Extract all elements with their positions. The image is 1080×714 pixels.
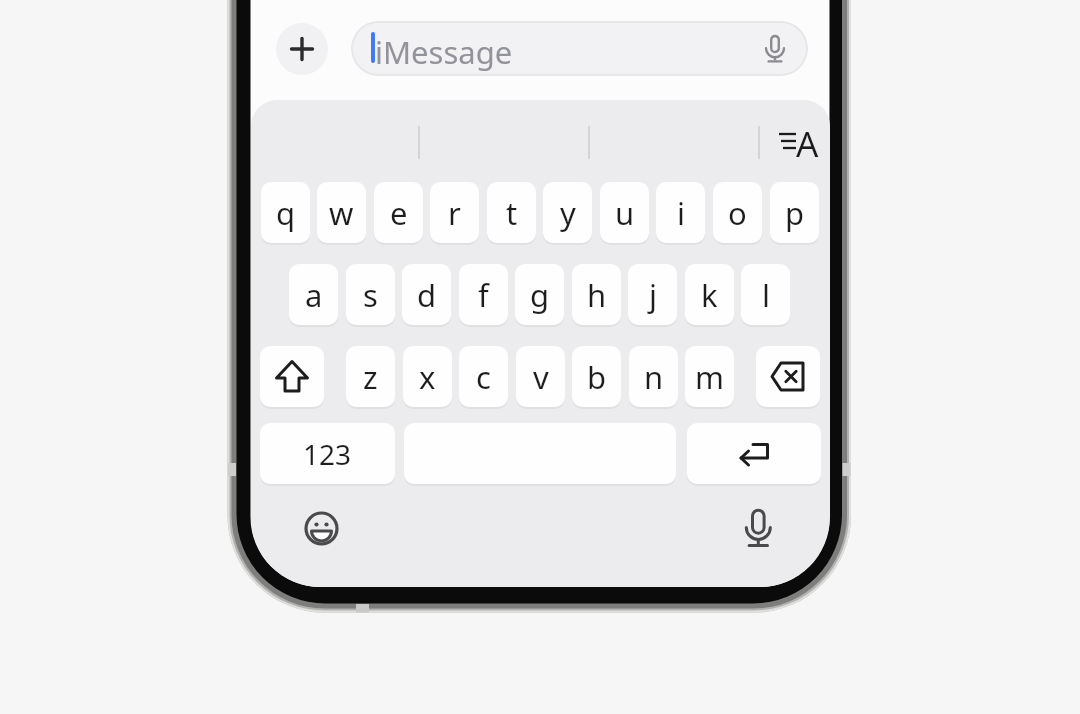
button[interactable]: m — [685, 346, 734, 407]
button[interactable]: x — [403, 346, 452, 407]
button[interactable]: e — [374, 182, 423, 243]
staticText: q — [276, 192, 296, 234]
button[interactable]: a — [289, 264, 338, 325]
staticText: r — [448, 192, 461, 234]
button[interactable]: s — [346, 264, 395, 325]
staticText: A — [796, 120, 819, 166]
button[interactable]: z — [346, 346, 395, 407]
button[interactable]: 123 — [260, 423, 395, 484]
staticText: w — [329, 192, 354, 234]
button[interactable] — [756, 346, 820, 407]
button[interactable] — [276, 23, 328, 75]
staticText: v — [533, 356, 549, 398]
staticText: h — [587, 274, 607, 316]
button[interactable]: t — [487, 182, 536, 243]
staticText: iMessage — [375, 31, 513, 73]
staticText: s — [363, 274, 378, 316]
button[interactable] — [733, 503, 783, 553]
staticText: f — [478, 274, 489, 316]
button[interactable]: b — [572, 346, 621, 407]
button[interactable] — [687, 423, 821, 484]
button[interactable]: v — [516, 346, 565, 407]
button[interactable]: k — [685, 264, 734, 325]
staticText: d — [417, 274, 437, 316]
staticText: m — [695, 356, 724, 398]
button[interactable]: w — [317, 182, 366, 243]
button[interactable]: i — [656, 182, 705, 243]
staticText: z — [363, 356, 378, 398]
staticText: p — [785, 192, 805, 234]
staticText: b — [587, 356, 607, 398]
button[interactable] — [297, 504, 346, 553]
button[interactable]: d — [402, 264, 451, 325]
staticText: k — [701, 274, 718, 316]
staticText: o — [728, 192, 747, 234]
staticText: 123 — [303, 435, 352, 473]
button[interactable] — [260, 346, 324, 407]
staticText: n — [644, 356, 664, 398]
button[interactable]: n — [629, 346, 678, 407]
staticText: x — [419, 356, 436, 398]
button[interactable]: p — [770, 182, 819, 243]
staticText: y — [560, 192, 576, 234]
button[interactable]: q — [261, 182, 310, 243]
button[interactable]: j — [628, 264, 677, 325]
button[interactable]: o — [713, 182, 762, 243]
staticText: l — [762, 274, 770, 316]
button[interactable]: iMessage — [351, 21, 808, 76]
button[interactable]: A — [764, 118, 820, 164]
button[interactable]: f — [459, 264, 508, 325]
button[interactable]: h — [572, 264, 621, 325]
staticText: u — [615, 192, 635, 234]
staticText: i — [677, 192, 685, 234]
button[interactable]: y — [543, 182, 592, 243]
button[interactable]: u — [600, 182, 649, 243]
staticText: a — [305, 274, 323, 316]
button[interactable]: c — [459, 346, 508, 407]
staticText: g — [530, 274, 550, 316]
staticText: c — [476, 356, 491, 398]
staticText: t — [506, 192, 518, 234]
staticText: j — [649, 274, 657, 316]
button[interactable]: g — [515, 264, 564, 325]
button[interactable]: l — [741, 264, 790, 325]
button[interactable]: r — [430, 182, 479, 243]
staticText: e — [390, 192, 408, 234]
